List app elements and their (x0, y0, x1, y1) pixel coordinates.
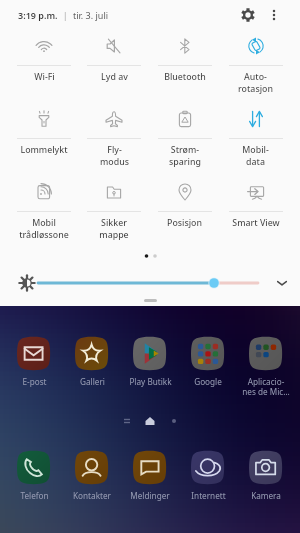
button[interactable]: More options (262, 3, 286, 27)
button[interactable]: Expand (271, 272, 293, 294)
staticText: Auto- rotasjon (238, 71, 273, 95)
staticText: E-post (22, 376, 47, 387)
button[interactable]: Brightness (38, 273, 258, 293)
button[interactable]: Posisjon (149, 176, 220, 229)
staticText: Mobil trådløssone (19, 217, 69, 241)
staticText: Smart View (232, 217, 280, 229)
staticText: Wi-Fi (34, 71, 55, 83)
staticText: Play Butikk (129, 376, 172, 387)
staticText: Fly- modus (100, 144, 129, 168)
button[interactable]: Auto- rotasjon (220, 30, 291, 95)
staticText: Sikker mappe (99, 217, 129, 241)
staticText: Strøm- sparing (169, 144, 201, 168)
button[interactable]: Lyd av (79, 30, 149, 83)
button[interactable]: Mobil- data (220, 103, 291, 168)
button[interactable]: Smart View (220, 176, 291, 229)
staticText: Mobil- data (242, 144, 269, 168)
staticText: Galleri (80, 376, 105, 387)
staticText: tir. 3. juli (73, 9, 109, 21)
staticText: Aplicacio- nes de Mic… (242, 376, 290, 397)
button[interactable]: Bluetooth (149, 30, 220, 83)
staticText: Lommelykt (20, 144, 68, 156)
button[interactable]: Settings (236, 3, 260, 27)
button[interactable]: Sikker mappe (79, 176, 149, 241)
staticText: Lyd av (101, 71, 128, 83)
button[interactable]: Lommelykt (9, 103, 79, 156)
staticText: Kontakter (73, 490, 111, 501)
button[interactable]: Wi-Fi (9, 30, 79, 83)
staticText: Telefon (20, 490, 49, 501)
staticText: Posisjon (167, 217, 202, 229)
staticText: Google (194, 376, 222, 387)
staticText: 3:19 p.m. (18, 9, 58, 21)
staticText: Meldinger (130, 490, 170, 501)
staticText: Bluetooth (164, 71, 206, 83)
button[interactable]: Fly- modus (79, 103, 149, 168)
button[interactable]: Strøm- sparing (149, 103, 220, 168)
staticText: | (58, 9, 73, 21)
staticText: Kamera (251, 490, 281, 501)
staticText: Internett (191, 490, 226, 501)
button[interactable]: Mobil trådløssone (9, 176, 79, 241)
